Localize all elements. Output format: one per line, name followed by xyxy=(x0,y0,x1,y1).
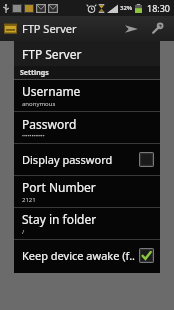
staticText: Display password xyxy=(22,152,136,167)
button[interactable]: Stay in folder xyxy=(14,208,160,239)
staticText: 18:30 xyxy=(147,2,171,14)
staticText: Port Number xyxy=(22,179,96,195)
staticText: FTP Server xyxy=(22,46,82,62)
staticText: anonymous xyxy=(22,100,56,108)
staticText: Settings xyxy=(20,68,49,78)
button[interactable]: Settings xyxy=(144,16,170,41)
button[interactable]: Port Number xyxy=(14,176,160,207)
staticText: 32% xyxy=(120,4,133,12)
staticText: FTP Server xyxy=(22,21,77,36)
staticText: Password xyxy=(22,116,77,132)
staticText: Stay in folder xyxy=(22,211,97,227)
staticText: Username xyxy=(22,83,81,99)
staticText: •••••••••••• xyxy=(22,133,45,140)
staticText: Keep device awake (f.. xyxy=(22,248,136,263)
button[interactable]: Keep device awake (f.. xyxy=(14,240,160,271)
button[interactable]: Display password xyxy=(14,144,160,175)
staticText: 2121 xyxy=(22,196,36,204)
button[interactable]: Password xyxy=(14,112,160,143)
button[interactable]: Username xyxy=(14,80,160,111)
button[interactable]: Start server xyxy=(118,16,144,41)
staticText: / xyxy=(22,228,25,236)
